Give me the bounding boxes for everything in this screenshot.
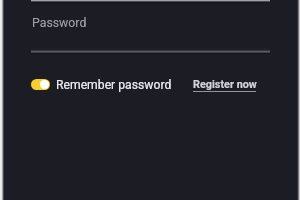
button[interactable]: Remember password bbox=[31, 78, 172, 92]
staticText: Register now bbox=[193, 78, 257, 91]
button[interactable]: Password input field bbox=[31, 4, 270, 52]
button[interactable]: Register now bbox=[193, 78, 257, 91]
staticText: Password bbox=[32, 16, 87, 30]
staticText: Remember password bbox=[56, 78, 172, 92]
